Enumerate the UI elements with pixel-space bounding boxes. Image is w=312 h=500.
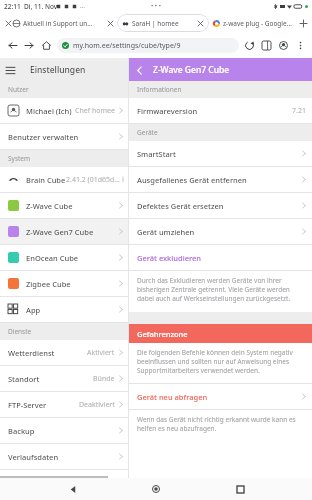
button[interactable]: FTP-Server <box>0 392 128 417</box>
staticText: System <box>8 154 31 163</box>
button[interactable]: Neu laden <box>241 37 258 54</box>
staticText: Durch das Exkludieren werden Geräte von … <box>137 276 304 303</box>
button[interactable]: SmartStart <box>129 141 312 166</box>
button[interactable]: Z-Wave Gen7 Cube <box>0 219 128 244</box>
staticText: z-wave plug - Google… <box>223 19 292 28</box>
staticText: FTP-Server <box>8 400 47 410</box>
staticText: Standort <box>8 374 40 384</box>
button[interactable]: Backup <box>0 418 128 443</box>
button[interactable]: Standort <box>0 366 128 391</box>
button[interactable]: Startseite <box>38 37 55 54</box>
staticText: Deaktiviert <box>79 400 115 410</box>
button[interactable]: Zurück <box>129 60 149 80</box>
staticText: Geräte <box>137 128 158 137</box>
button[interactable]: Menü <box>0 60 20 80</box>
staticText: Defektes Gerät ersetzen <box>137 201 224 211</box>
button[interactable]: Mehr <box>292 37 309 54</box>
button[interactable]: SaraH | homee <box>117 14 209 32</box>
button[interactable]: Firmwareversion <box>129 98 312 123</box>
button[interactable]: Z-Wave Cube <box>0 193 128 218</box>
staticText: SmartStart <box>137 149 176 159</box>
staticText: Zigbee Cube <box>26 279 71 289</box>
staticText: Z-Wave Gen7 Cube <box>26 227 94 237</box>
button[interactable]: Profil <box>275 37 292 54</box>
staticText: Brain Cube <box>26 175 66 185</box>
staticText: Firmwareversion <box>137 106 198 116</box>
button[interactable]: Letzte Apps <box>229 478 251 500</box>
staticText: Die folgenden Befehle können dein System… <box>137 348 304 375</box>
staticText: Ausgefallenes Gerät entfernen <box>137 175 247 185</box>
staticText: Nutzer <box>8 85 29 94</box>
button[interactable]: Zurück <box>4 37 21 54</box>
staticText: Wetterdienst <box>8 348 55 358</box>
staticText: App <box>26 305 41 315</box>
button[interactable]: Michael (Ich) <box>0 98 128 123</box>
staticText: Backup <box>8 426 35 436</box>
button[interactable]: App <box>0 297 128 322</box>
staticText: 2.41.2 (01d65d… <box>66 175 120 185</box>
staticText: Benutzer verwalten <box>8 132 79 142</box>
staticText: Chef homee <box>75 106 115 116</box>
staticText: Wenn das Gerät nicht richtig erkannt wur… <box>137 415 304 433</box>
button[interactable]: Ausgefallenes Gerät entfernen <box>129 167 312 192</box>
button[interactable]: Gerät neu abfragen <box>129 384 312 409</box>
button[interactable]: Zigbee Cube <box>0 271 128 296</box>
button[interactable]: Wetterdienst <box>0 340 128 365</box>
button[interactable]: EnOcean Cube <box>0 245 128 270</box>
staticText: Michael (Ich) <box>26 106 72 116</box>
staticText: ... <box>80 2 85 10</box>
staticText: Z-Wave Cube <box>26 201 73 211</box>
staticText: Verlaufsdaten <box>8 452 59 462</box>
staticText: my.hom.ee/settings/cube/type/9 <box>73 41 181 51</box>
button[interactable]: Defektes Gerät ersetzen <box>129 193 312 218</box>
staticText: • • • <box>151 2 161 10</box>
staticText: Einstellungen <box>30 64 86 76</box>
button[interactable]: Seitenleiste <box>258 37 275 54</box>
staticText: Informationen <box>137 85 182 94</box>
button[interactable]: Zurück <box>62 478 84 500</box>
button[interactable]: Verlaufsdaten <box>0 444 128 469</box>
staticText: Z-Wave Gen7 Cube <box>153 64 230 76</box>
button[interactable]: Tab schließen <box>105 18 115 28</box>
staticText: Gerät umziehen <box>137 227 195 237</box>
staticText: Aktuell in Support un… <box>23 19 93 28</box>
staticText: Aktiviert <box>87 348 115 358</box>
staticText: SaraH | homee <box>132 19 196 28</box>
button[interactable]: Tab schließen <box>196 19 204 27</box>
staticText: Gefahrenzone <box>137 329 188 339</box>
staticText: 22:11 Di, 11. Nov <box>4 2 58 11</box>
staticText: Bünde <box>93 374 115 384</box>
button[interactable]: Tab schließen <box>3 18 13 28</box>
staticText: Gerät exkludieren <box>137 253 202 263</box>
button[interactable]: Aktuell in Support un… <box>13 14 105 32</box>
staticText: EnOcean Cube <box>26 253 79 263</box>
button[interactable]: Brain Cube <box>0 167 128 192</box>
button[interactable]: Neuer Tab <box>296 16 310 30</box>
button[interactable]: Gerät umziehen <box>129 219 312 244</box>
staticText: Dienste <box>8 327 32 336</box>
button[interactable]: Gerät exkludieren <box>129 245 312 270</box>
button[interactable]: Benutzer verwalten <box>0 124 128 149</box>
button[interactable]: Vorwärts <box>21 37 38 54</box>
button[interactable]: z-wave plug - Google… <box>213 14 296 32</box>
staticText: Gerät neu abfragen <box>137 392 208 402</box>
staticText: 7.21 <box>292 106 306 116</box>
button[interactable]: Startbildschirm <box>145 478 167 500</box>
button[interactable]: my.hom.ee/settings/cube/type/9 <box>57 38 239 53</box>
